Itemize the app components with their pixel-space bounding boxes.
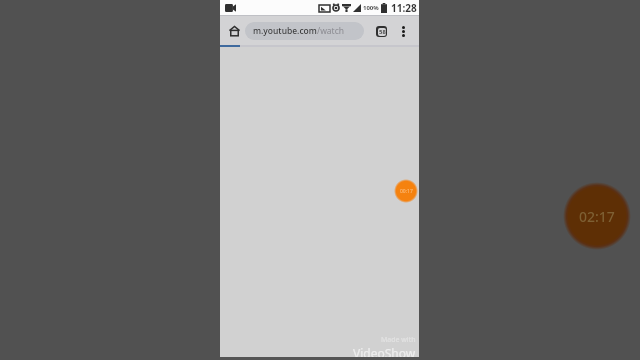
button[interactable]: Home [225,22,243,40]
staticText: Made with [381,335,416,345]
staticText: 100% [363,4,379,12]
staticText: 11:28 [391,1,417,15]
staticText: 02:17 [579,207,615,226]
staticText: VideoShow [353,345,416,360]
button[interactable]: More options [394,22,412,40]
staticText: /watch [317,25,345,37]
button[interactable]: Recording timer [394,179,418,203]
button[interactable]: m.youtube.com [245,22,364,40]
staticText: 58 [379,28,386,36]
staticText: m.youtube.com [253,25,317,37]
staticText: 00:17 [400,188,413,195]
button[interactable]: Open tabs [372,22,390,40]
